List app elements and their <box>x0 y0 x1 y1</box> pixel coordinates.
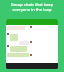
staticText: Group chats that keep everyone in the lo… <box>4 2 60 12</box>
